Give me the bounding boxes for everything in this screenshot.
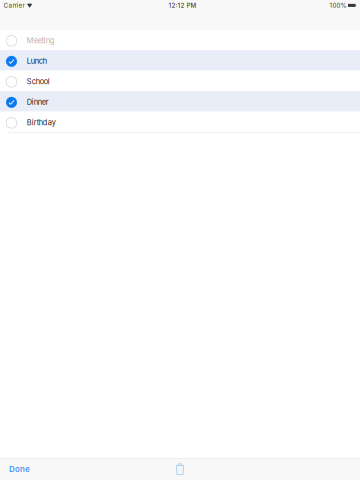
staticText: Carrier	[3, 2, 24, 9]
staticText: Birthday	[27, 118, 56, 127]
button[interactable]: Dinner	[0, 91, 360, 112]
staticText: Lunch	[27, 56, 47, 65]
staticText: Done	[9, 464, 30, 474]
staticText: School	[27, 77, 50, 86]
staticText: Dinner	[27, 97, 49, 106]
staticText: 12:12 PM	[168, 2, 196, 9]
staticText: 100%	[329, 2, 346, 9]
button[interactable]: Birthday	[0, 112, 360, 132]
button[interactable]: Lunch	[0, 50, 360, 71]
button[interactable]: Meeting	[0, 30, 360, 50]
button[interactable]: School	[0, 71, 360, 91]
staticText: Meeting	[27, 36, 55, 45]
button[interactable]: Delete	[171, 459, 188, 479]
button[interactable]: Done	[0, 459, 39, 479]
